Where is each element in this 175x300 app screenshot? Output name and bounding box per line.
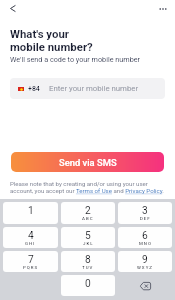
button[interactable]: 0	[61, 275, 115, 296]
button[interactable]: Delete	[118, 275, 172, 296]
staticText: 1	[28, 205, 34, 217]
staticText: 2	[85, 205, 91, 217]
staticText: Send via SMS	[59, 157, 117, 168]
staticText: We'll send a code to your mobile number	[10, 55, 141, 63]
staticText: TUV	[82, 265, 94, 270]
button[interactable]: 4	[3, 227, 58, 248]
button[interactable]: Back	[4, 0, 21, 17]
staticText: Enter your mobile number	[49, 84, 139, 93]
button[interactable]: 6	[118, 227, 172, 248]
staticText: ABC	[82, 216, 94, 221]
button[interactable]: 1	[3, 202, 58, 224]
staticText: DEF	[140, 216, 151, 221]
button[interactable]: 3	[118, 202, 172, 224]
staticText: 5	[85, 230, 91, 242]
button[interactable]: +84	[10, 78, 165, 99]
button[interactable]: Send via SMS	[11, 152, 164, 172]
staticText: +84	[28, 85, 40, 93]
staticText: 4	[28, 230, 34, 242]
staticText: 3	[142, 205, 148, 217]
staticText: PQRS	[23, 265, 39, 270]
staticText: 9	[142, 254, 148, 266]
staticText: 6	[142, 230, 148, 242]
button[interactable]: 5	[61, 227, 115, 248]
staticText: What's your mobile number?	[10, 27, 93, 54]
staticText: GHI	[25, 241, 36, 246]
button[interactable]: More options	[154, 0, 171, 17]
staticText: WXYZ	[137, 265, 153, 270]
staticText: MNO	[139, 241, 152, 246]
staticText: 0	[85, 278, 91, 290]
staticText: 7	[28, 254, 34, 266]
button[interactable]: 9	[118, 251, 172, 272]
button[interactable]: 7	[3, 251, 58, 272]
staticText: JKL	[83, 241, 94, 246]
staticText: 8	[85, 254, 91, 266]
button[interactable]: 8	[61, 251, 115, 272]
button[interactable]: 2	[61, 202, 115, 224]
staticText: Please note that by creating and/or usin…	[10, 180, 173, 195]
